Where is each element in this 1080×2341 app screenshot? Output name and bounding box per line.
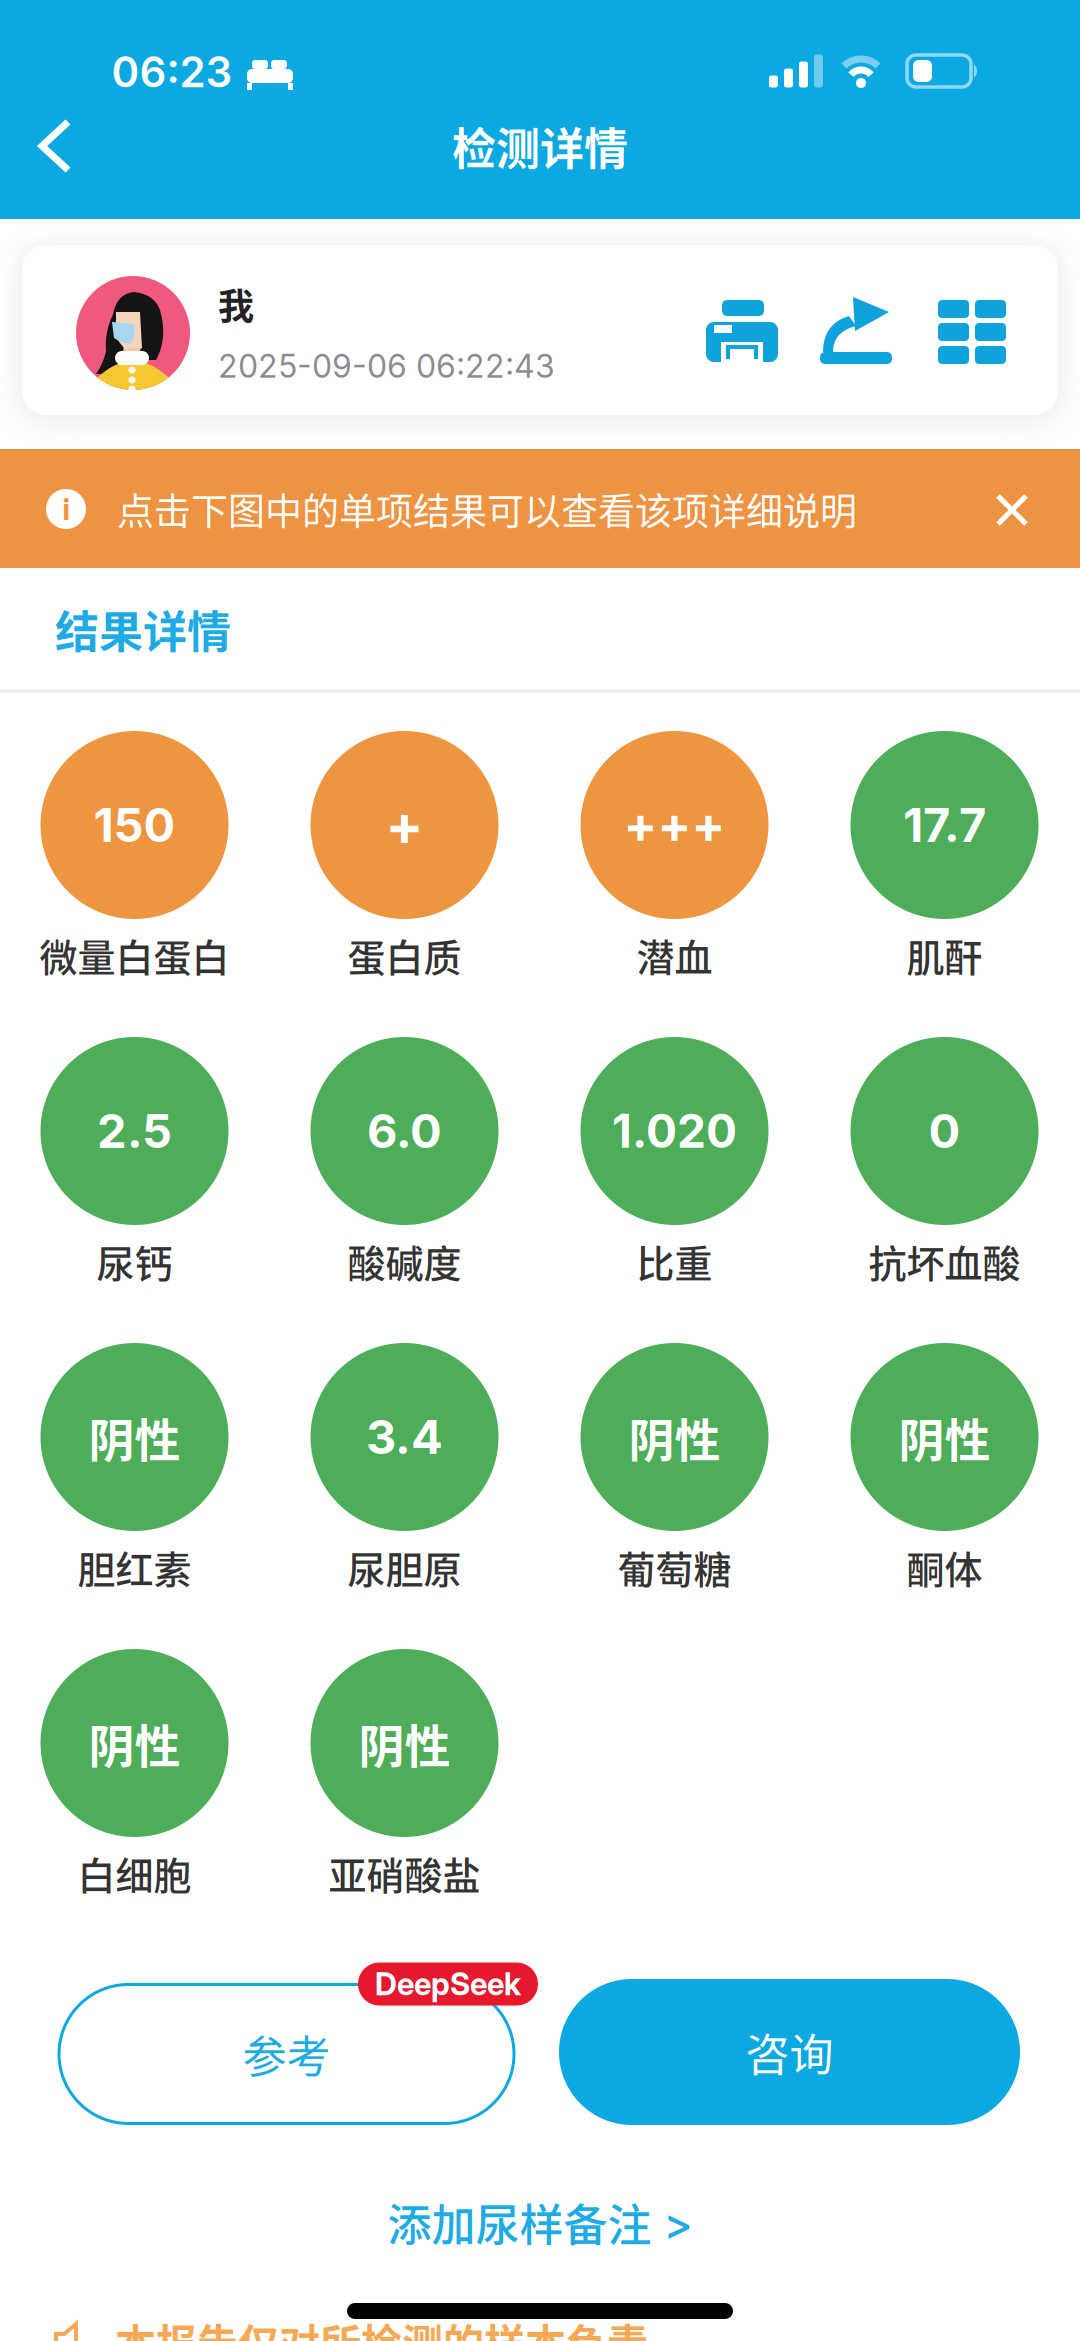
staticText: 17.7 — [903, 797, 986, 853]
staticText: 150 — [93, 797, 175, 853]
button[interactable] — [706, 300, 778, 362]
button[interactable]: 6.0 — [279, 1037, 529, 1297]
button[interactable] — [938, 300, 1006, 364]
staticText: 3.4 — [366, 1409, 443, 1465]
staticText: DeepSeek — [375, 1966, 521, 2002]
button[interactable]: + — [279, 731, 529, 991]
staticText: 添加尿样备注 > — [387, 2191, 692, 2253]
staticText: 抗坏血酸 — [868, 1234, 1020, 1288]
button[interactable]: 咨询 — [559, 1979, 1020, 2125]
staticText: 比重 — [636, 1234, 712, 1288]
staticText: 酮体 — [906, 1540, 982, 1594]
staticText: 结果详情 — [55, 598, 231, 660]
button[interactable]: 阴性 — [279, 1649, 529, 1909]
button[interactable]: 1.020 — [549, 1037, 799, 1297]
staticText: 葡萄糖 — [617, 1540, 731, 1594]
button[interactable]: 17.7 — [819, 731, 1069, 991]
staticText: 阴性 — [358, 1710, 450, 1775]
staticText: 胆红素 — [77, 1540, 191, 1594]
staticText: 阴性 — [628, 1404, 720, 1469]
staticText: 1.020 — [612, 1104, 737, 1158]
staticText: 本报告仅对所检测的样本负责 — [115, 2312, 648, 2341]
staticText: 咨询 — [745, 2021, 833, 2083]
button[interactable]: 阴性 — [549, 1343, 799, 1603]
staticText: 6.0 — [367, 1103, 442, 1159]
staticText: 尿钙 — [96, 1234, 172, 1288]
staticText: 尿胆原 — [347, 1540, 461, 1594]
button[interactable] — [986, 484, 1038, 536]
button[interactable]: 阴性 — [9, 1343, 259, 1603]
button[interactable] — [26, 116, 86, 176]
button[interactable]: 参考 — [59, 1984, 514, 2123]
button[interactable]: 阴性 — [9, 1649, 259, 1909]
button[interactable]: 2.5 — [9, 1037, 259, 1297]
button[interactable]: 添加尿样备注 > — [387, 2191, 692, 2253]
staticText: 阴性 — [88, 1404, 180, 1469]
staticText: 参考 — [242, 2023, 330, 2085]
staticText: 2025-09-06 06:22:43 — [218, 347, 555, 385]
button[interactable]: 阴性 — [819, 1343, 1069, 1603]
button[interactable]: 0 — [819, 1037, 1069, 1297]
staticText: i — [62, 491, 69, 527]
button[interactable] — [819, 296, 893, 364]
staticText: 阴性 — [898, 1404, 990, 1469]
staticText: 肌酐 — [906, 928, 982, 982]
button[interactable]: 3.4 — [279, 1343, 529, 1603]
staticText: +++ — [623, 795, 725, 854]
staticText: 亚硝酸盐 — [328, 1846, 480, 1900]
button[interactable]: 150 — [9, 731, 259, 991]
staticText: 06:23 — [111, 47, 232, 97]
staticText: 点击下图中的单项结果可以查看该项详细说明 — [117, 483, 857, 535]
staticText: 0 — [928, 1103, 960, 1159]
staticText: 检测详情 — [452, 115, 628, 177]
staticText: 蛋白质 — [347, 928, 461, 982]
staticText: + — [385, 792, 423, 858]
staticText: 潜血 — [636, 928, 712, 982]
button[interactable]: +++ — [549, 731, 799, 991]
staticText: 阴性 — [88, 1710, 180, 1775]
staticText: 白细胞 — [77, 1846, 191, 1900]
staticText: 我 — [218, 279, 254, 329]
staticText: 酸碱度 — [347, 1234, 461, 1288]
staticText: 2.5 — [97, 1103, 172, 1159]
staticText: 微量白蛋白 — [39, 928, 229, 982]
